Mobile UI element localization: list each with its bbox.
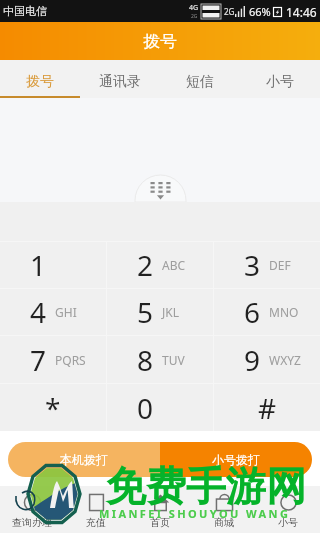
button[interactable]: 8 — [107, 336, 213, 383]
staticText: 商城 — [214, 516, 234, 529]
button[interactable]: 9 — [214, 336, 320, 383]
staticText: 4 — [30, 293, 47, 331]
button[interactable]: 首页 — [128, 486, 192, 533]
staticText: 9 — [244, 341, 261, 379]
staticText: 小号拨打 — [212, 452, 260, 467]
staticText: 短信 — [186, 73, 214, 91]
staticText: ABC — [162, 257, 186, 273]
button[interactable]: 7 — [0, 336, 106, 383]
button[interactable]: 小号 — [256, 486, 320, 533]
staticText: 66% — [249, 4, 271, 19]
button[interactable]: 拨号 — [0, 60, 80, 98]
button[interactable]: 4 — [0, 289, 106, 335]
button[interactable]: 1 — [0, 242, 106, 288]
staticText: 2G — [191, 13, 198, 20]
staticText: 2G — [224, 6, 235, 17]
button[interactable]: 充值 — [64, 486, 128, 533]
staticText: 2 — [137, 246, 154, 284]
staticText: 小号 — [266, 73, 294, 91]
staticText: 免费手游网 — [106, 461, 306, 511]
staticText: WXYZ — [269, 352, 301, 368]
staticText: JKL — [162, 304, 179, 320]
staticText: GHI — [55, 304, 77, 320]
staticText: * — [45, 389, 61, 427]
staticText: 8 — [137, 341, 154, 379]
button[interactable]: 短信 — [160, 60, 240, 98]
staticText: 查询办理 — [12, 516, 52, 529]
staticText: PQRS — [55, 352, 86, 368]
button[interactable]: 通讯录 — [80, 60, 160, 98]
staticText: DEF — [269, 257, 291, 273]
button[interactable]: 5 — [107, 289, 213, 335]
staticText: 通讯录 — [99, 73, 141, 91]
staticText: TUV — [162, 352, 185, 368]
staticText: MIANFEI SHOUYOU WANG — [99, 506, 291, 521]
staticText: 1 — [30, 246, 47, 284]
button[interactable]: 商城 — [192, 486, 256, 533]
staticText: 本机拨打 — [60, 452, 108, 467]
button[interactable]: 本机拨打 — [8, 442, 160, 477]
staticText: 6 — [244, 293, 261, 331]
button[interactable]: 2 — [107, 242, 213, 288]
staticText: MNO — [269, 304, 299, 320]
staticText: 0 — [137, 389, 154, 427]
staticText: 4G — [189, 3, 199, 13]
button[interactable]: * — [0, 384, 106, 431]
button[interactable]: 小号 — [240, 60, 320, 98]
button[interactable]: 小号拨打 — [160, 442, 312, 477]
button[interactable]: 6 — [214, 289, 320, 335]
button[interactable]: 查询办理 — [0, 486, 64, 533]
staticText: # — [258, 389, 277, 427]
staticText: 首页 — [150, 516, 170, 529]
staticText: 5 — [137, 293, 154, 331]
button[interactable]: # — [214, 384, 320, 431]
staticText: 中国电信 — [3, 4, 47, 18]
button[interactable]: 3 — [214, 242, 320, 288]
staticText: 拨号 — [26, 73, 54, 91]
staticText: 14:46 — [286, 4, 317, 20]
staticText: 小号 — [278, 516, 298, 529]
staticText: 充值 — [86, 516, 106, 529]
button[interactable]: 0 — [107, 384, 213, 431]
staticText: 3 — [244, 246, 261, 284]
staticText: 拨号 — [143, 31, 177, 52]
staticText: 7 — [30, 341, 47, 379]
